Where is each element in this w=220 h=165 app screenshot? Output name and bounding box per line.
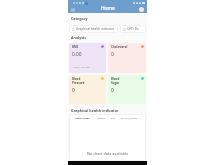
staticText: 0 bbox=[111, 87, 114, 94]
staticText: 0.00 bbox=[72, 51, 82, 58]
button[interactable]: OPD-Dx bbox=[120, 25, 146, 33]
staticText: Weight bbox=[97, 117, 105, 120]
staticText: BMI bbox=[111, 117, 116, 120]
staticText: Analysis bbox=[71, 35, 87, 40]
button[interactable]: Blood Pressure bbox=[69, 75, 106, 104]
staticText: Graphical health indicator bbox=[76, 27, 115, 31]
staticText: Cholesterol bbox=[111, 45, 128, 49]
staticText: 0 bbox=[111, 51, 114, 58]
staticText: ~ 0cm | wt: 0kg bbox=[72, 65, 90, 68]
button[interactable]: Blood Sugar bbox=[108, 75, 146, 104]
staticText: Health Index bbox=[75, 117, 90, 120]
staticText: Blood Pressure bbox=[72, 77, 85, 85]
staticText: Graphical health indicator bbox=[71, 108, 119, 113]
button[interactable]: Cholesterol bbox=[108, 43, 146, 73]
button[interactable]: BMI bbox=[111, 117, 116, 120]
staticText: OPD-Dx bbox=[127, 27, 139, 31]
button[interactable]: Open navigation menu bbox=[70, 7, 76, 13]
button[interactable]: Profile bbox=[139, 7, 144, 12]
button[interactable]: BMI bbox=[69, 43, 106, 73]
button[interactable]: BP Sys (mmHg) bbox=[121, 117, 138, 120]
staticText: 0 bbox=[72, 87, 75, 94]
button[interactable]: Health Index bbox=[75, 117, 90, 120]
staticText: BMI bbox=[72, 45, 78, 49]
staticText: Blood Sugar bbox=[111, 77, 120, 85]
staticText: Category bbox=[71, 16, 88, 21]
button[interactable]: Graphical health indicator bbox=[69, 25, 118, 33]
staticText: BP Sys (mmHg) bbox=[121, 117, 138, 120]
staticText: No chart data available bbox=[87, 151, 129, 156]
button[interactable]: Weight bbox=[97, 117, 105, 120]
staticText: Home bbox=[101, 5, 115, 12]
